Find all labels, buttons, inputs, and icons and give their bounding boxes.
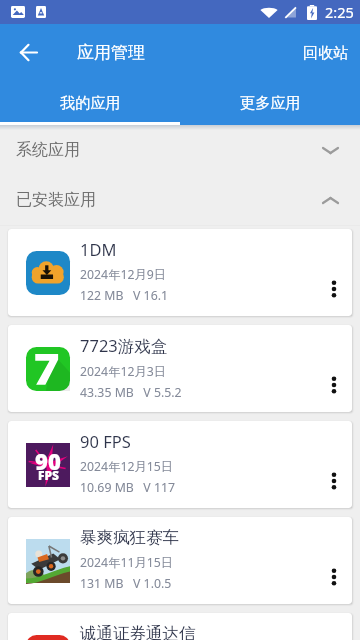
button[interactable]: 7723游戏盒 — [8, 325, 352, 412]
button[interactable]: 更多应用 — [180, 80, 360, 125]
staticText: 我的应用 — [60, 93, 121, 112]
button[interactable]: 系统应用 — [0, 125, 360, 175]
staticText: 回收站 — [303, 43, 349, 62]
staticText: 1DM — [80, 238, 117, 260]
staticText: 90 FPS — [80, 430, 131, 452]
staticText: 7723游戏盒 — [80, 334, 168, 357]
staticText: 2:25 — [325, 2, 354, 22]
staticText: 122 MB V 16.1 — [80, 287, 169, 304]
button[interactable]: 暴爽疯狂赛车 — [8, 517, 352, 604]
staticText: 暴爽疯狂赛车 — [80, 527, 179, 548]
staticText: 系统应用 — [16, 140, 80, 160]
button[interactable]: More options — [314, 325, 352, 412]
staticText: 更多应用 — [240, 93, 301, 112]
staticText: 2024年11月15日 — [80, 554, 174, 571]
staticText: 已安装应用 — [16, 190, 96, 210]
button[interactable]: 我的应用 — [0, 80, 180, 125]
staticText: 10.69 MB V 117 — [80, 479, 176, 496]
button[interactable]: More options — [314, 229, 352, 316]
button[interactable]: More options — [314, 421, 352, 508]
staticText: FPS — [38, 467, 59, 483]
staticText: 90 — [35, 446, 61, 476]
staticText: 131 MB V 1.0.5 — [80, 575, 172, 592]
staticText: 43.35 MB V 5.5.2 — [80, 384, 182, 401]
button[interactable]: 诚通证券通达信 — [8, 613, 352, 640]
staticText: 应用管理 — [77, 42, 145, 63]
staticText: 诚通证券通达信 — [80, 623, 196, 640]
button[interactable]: 已安装应用 — [0, 175, 360, 225]
button[interactable]: 回收站 — [289, 24, 360, 80]
staticText: 2024年12月9日 — [80, 266, 167, 283]
button[interactable]: Back — [8, 32, 48, 72]
staticText: 2024年12月3日 — [80, 363, 167, 380]
button[interactable]: More options — [314, 517, 352, 604]
button[interactable]: 1DM — [8, 229, 352, 316]
button[interactable]: 90 — [8, 421, 352, 508]
staticText: 2024年12月15日 — [80, 458, 174, 475]
